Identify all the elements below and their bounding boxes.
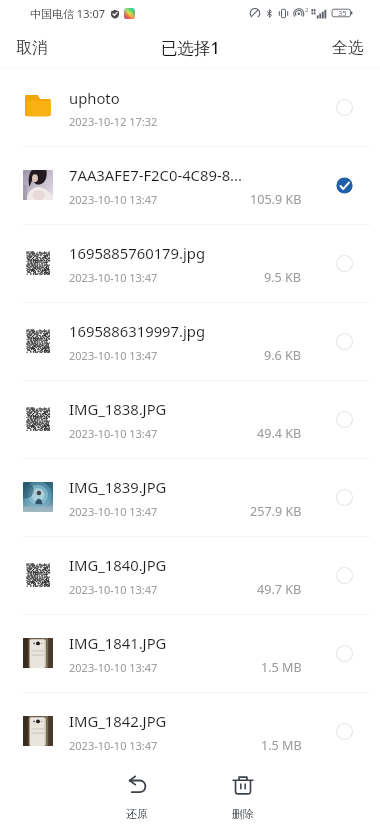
staticText: 2023-10-10 13:47 [69,504,158,519]
button[interactable]: IMG_1841.JPG [0,614,380,692]
staticText: 2023-10-10 13:47 [69,426,158,441]
staticText: 2 [305,6,309,14]
staticText: 2023-10-10 13:47 [69,270,158,285]
staticText: 2023-10-10 13:47 [69,192,158,207]
staticText: 35 [338,8,347,18]
staticText: 中国电信 13:07 [30,6,105,21]
staticText: 2023-10-10 13:47 [69,738,158,753]
staticText: uphoto [69,88,120,108]
button[interactable]: 全选 [316,30,380,66]
staticText: 已选择1 [161,36,220,59]
staticText: IMG_1842.JPG [69,711,167,731]
staticText: 取消 [16,38,48,58]
button[interactable]: 1695885760179.jpg [0,224,380,302]
button[interactable]: IMG_1842.JPG [0,692,380,770]
staticText: 1695886319997.jpg [69,321,206,341]
staticText: 9.6 KB [264,347,302,364]
staticText: 1.5 MB [261,659,302,676]
staticText: 2023-10-10 13:47 [69,660,158,675]
staticText: IMG_1841.JPG [69,633,167,653]
staticText: 105.9 KB [250,191,302,208]
button[interactable]: Select item [330,93,358,121]
staticText: 1.5 MB [261,737,302,754]
staticText: 7AA3AFE7-F2C0-4C89-8... [69,165,243,185]
button[interactable]: 7AA3AFE7-F2C0-4C89-8... [0,146,380,224]
staticText: 9.5 KB [264,269,302,286]
button[interactable]: Select item [330,639,358,667]
staticText: 1695885760179.jpg [69,243,206,263]
button[interactable]: Restore [111,760,163,821]
staticText: 删除 [232,807,254,821]
staticText: 2023-10-10 13:47 [69,582,158,597]
button[interactable]: Select item [330,327,358,355]
button[interactable]: IMG_1839.JPG [0,458,380,536]
button[interactable]: IMG_1838.JPG [0,380,380,458]
staticText: 2023-10-12 17:32 [69,114,158,129]
button[interactable]: Select item [330,561,358,589]
staticText: IMG_1840.JPG [69,555,167,575]
button[interactable]: Select item [330,717,358,745]
button[interactable]: 1695886319997.jpg [0,302,380,380]
staticText: 49.7 KB [257,581,302,598]
button[interactable]: Select item [330,171,358,199]
button[interactable]: Select item [330,249,358,277]
staticText: 2023-10-10 13:47 [69,348,158,363]
staticText: 257.9 KB [250,503,302,520]
staticText: IMG_1839.JPG [69,477,167,497]
button[interactable]: uphoto [0,68,380,146]
staticText: 49.4 KB [257,425,302,442]
button[interactable]: IMG_1840.JPG [0,536,380,614]
button[interactable]: Select item [330,405,358,433]
button[interactable]: Select item [330,483,358,511]
button[interactable]: Delete [217,760,269,821]
button[interactable]: 取消 [0,30,64,66]
staticText: 还原 [126,807,148,821]
staticText: IMG_1838.JPG [69,399,167,419]
staticText: 全选 [332,38,364,58]
